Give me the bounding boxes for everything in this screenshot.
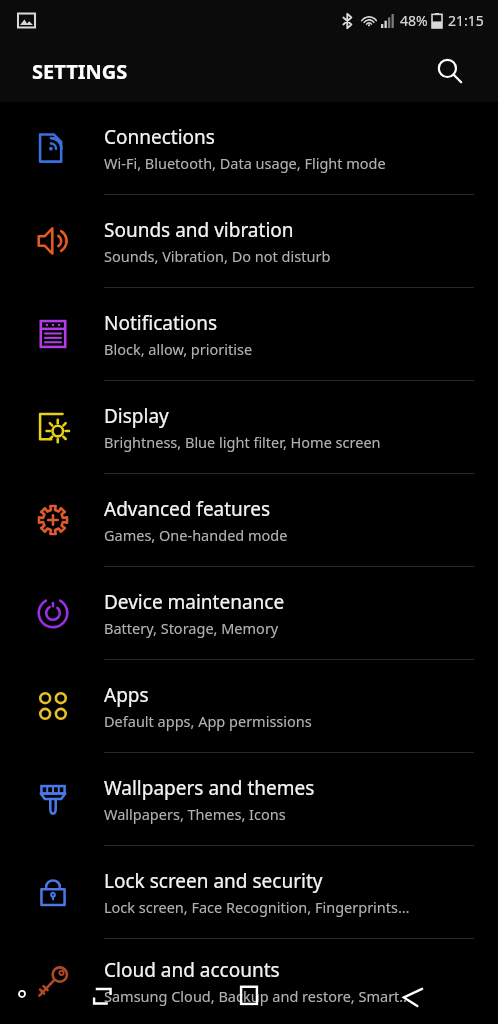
button[interactable]: Apps	[0, 660, 498, 752]
staticText: Device maintenance	[104, 589, 285, 615]
staticText: Samsung Cloud, Backup and restore, Smart…	[104, 986, 411, 1006]
button[interactable]: Sounds and vibration	[0, 195, 498, 287]
staticText: 21:15	[448, 11, 484, 30]
staticText: Battery, Storage, Memory	[104, 618, 279, 638]
button[interactable]: Notifications	[0, 288, 498, 380]
staticText: Display	[104, 403, 169, 429]
staticText: Brightness, Blue light filter, Home scre…	[104, 432, 381, 452]
button[interactable]: Display	[0, 381, 498, 473]
staticText: Sounds and vibration	[104, 217, 294, 243]
staticText: Games, One-handed mode	[104, 525, 288, 545]
staticText: Wallpapers and themes	[104, 775, 315, 801]
button[interactable]: Device maintenance	[0, 567, 498, 659]
button[interactable]: Cloud and accounts	[0, 939, 498, 1024]
button[interactable]: Wallpapers and themes	[0, 753, 498, 845]
button[interactable]: Back	[384, 968, 440, 1024]
button[interactable]: Advanced features	[0, 474, 498, 566]
button[interactable]: Search	[428, 49, 472, 93]
staticText: Lock screen, Face Recognition, Fingerpri…	[104, 897, 410, 917]
staticText: Default apps, App permissions	[104, 711, 312, 731]
staticText: Sounds, Vibration, Do not disturb	[104, 246, 331, 266]
staticText: Apps	[104, 682, 149, 708]
button[interactable]: Home	[221, 968, 277, 1024]
staticText: Block, allow, prioritise	[104, 339, 253, 359]
button[interactable]: Recents	[76, 968, 132, 1024]
staticText: SETTINGS	[32, 58, 128, 85]
staticText: Lock screen and security	[104, 868, 323, 894]
staticText: Wallpapers, Themes, Icons	[104, 804, 286, 824]
staticText: 48%	[400, 11, 428, 30]
staticText: Cloud and accounts	[104, 957, 280, 983]
staticText: Advanced features	[104, 496, 271, 522]
staticText: Wi-Fi, Bluetooth, Data usage, Flight mod…	[104, 153, 386, 173]
staticText: Connections	[104, 124, 215, 150]
button[interactable]: Connections	[0, 102, 498, 194]
button[interactable]: Lock screen and security	[0, 846, 498, 938]
staticText: Notifications	[104, 310, 218, 336]
